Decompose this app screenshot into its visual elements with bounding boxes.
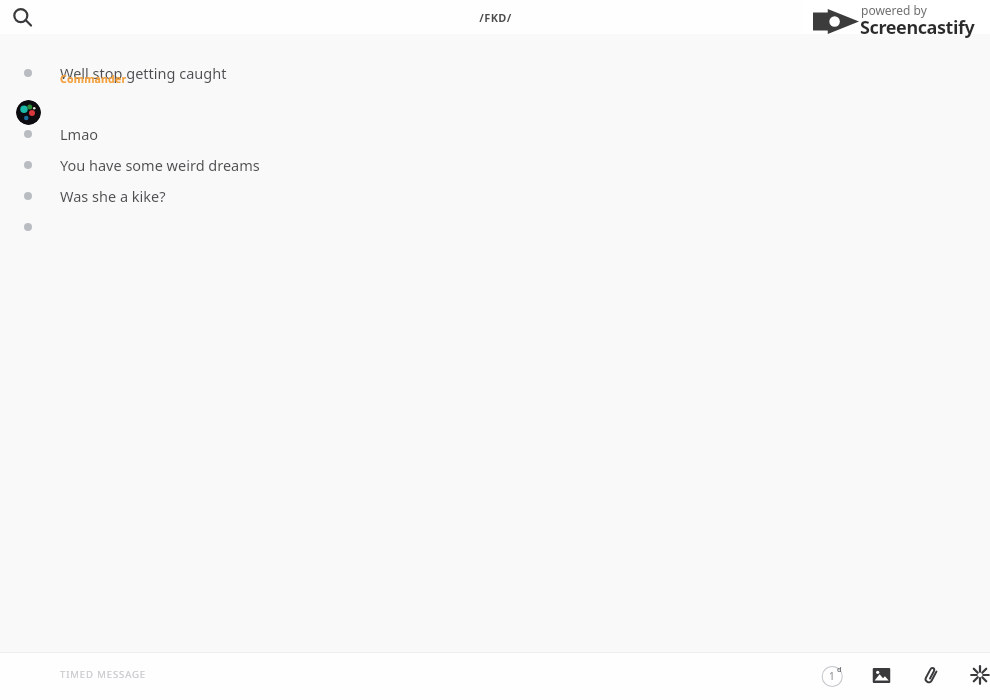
staticText: /FKD/ (479, 10, 512, 25)
staticText: Well stop getting caught (60, 63, 227, 83)
staticText: powered by (861, 2, 927, 18)
button[interactable]: Send photo (866, 660, 896, 690)
staticText: Lmao (60, 124, 99, 144)
staticText: Screencastify (860, 15, 975, 40)
button[interactable]: Effects (965, 660, 990, 690)
button[interactable]: Commander avatar (16, 100, 41, 125)
button[interactable]: Message timer, 1 day (819, 660, 849, 690)
staticText: TIMED MESSAGE (60, 668, 146, 681)
button[interactable]: Info (971, 3, 990, 30)
staticText: d (837, 664, 842, 674)
button[interactable]: TIMED MESSAGE (60, 668, 660, 684)
staticText: Commander (60, 72, 127, 86)
button[interactable]: Call (939, 3, 966, 30)
button[interactable]: Well stop getting caught (0, 62, 990, 84)
staticText: 1 (829, 669, 835, 683)
button[interactable]: Attach file (916, 660, 946, 690)
button[interactable]: You have some weird dreams (0, 154, 990, 176)
staticText: You have some weird dreams (60, 155, 260, 175)
button[interactable]: Lmao (0, 123, 990, 145)
button[interactable]: Commander (60, 72, 127, 88)
button[interactable]: Was she a kike? (0, 185, 990, 207)
button[interactable]: Search (5, 0, 39, 34)
staticText: Was she a kike? (60, 186, 166, 206)
